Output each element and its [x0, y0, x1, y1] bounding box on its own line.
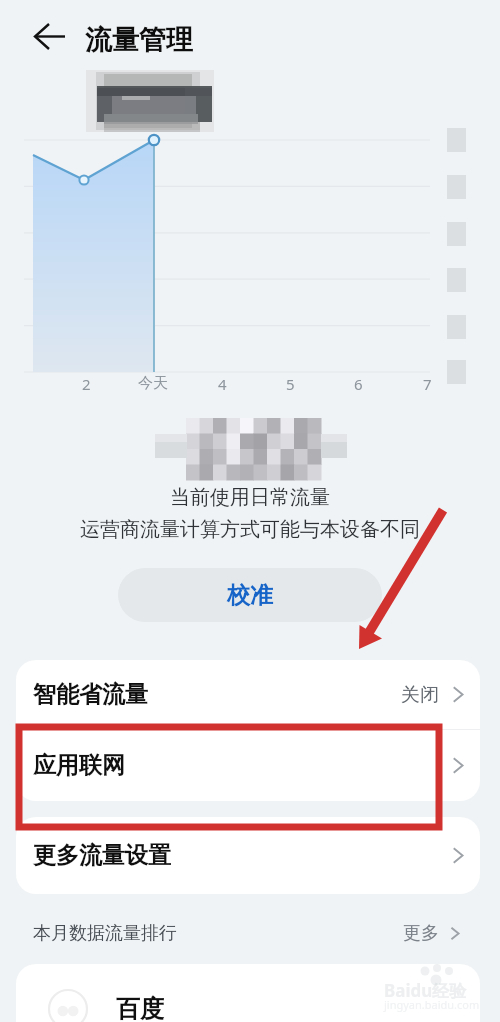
staticText: 运营商流量计算方式可能与本设备不同	[0, 517, 500, 542]
staticText: 流量管理	[85, 23, 193, 57]
staticText: 5	[286, 374, 295, 394]
button[interactable]: 本月数据流量排行	[16, 908, 480, 958]
staticText: 今天	[138, 374, 168, 393]
staticText: 应用联网	[33, 751, 125, 780]
staticText: 2	[82, 374, 91, 394]
button[interactable]: 百度	[16, 964, 480, 1022]
staticText: 4	[218, 374, 227, 394]
button[interactable]: 智能省流量	[16, 660, 480, 729]
staticText: 更多	[403, 922, 439, 945]
staticText: 智能省流量	[33, 680, 148, 709]
staticText: 6	[354, 374, 363, 394]
staticText: 本月数据流量排行	[33, 922, 177, 945]
button[interactable]: 更多流量设置	[16, 817, 480, 894]
staticText: jingyan.baidu.com	[384, 997, 480, 1012]
staticText: 关闭	[401, 683, 439, 707]
staticText: 7	[423, 374, 432, 394]
staticText: 更多流量设置	[33, 841, 171, 870]
button[interactable]: Back	[18, 12, 68, 62]
staticText: 校准	[227, 581, 273, 610]
button[interactable]: 校准	[118, 568, 382, 622]
button[interactable]: 应用联网	[16, 730, 480, 801]
staticText: 百度	[116, 994, 164, 1022]
staticText: 当前使用日常流量	[0, 485, 500, 510]
staticText: Baidu经验	[384, 979, 467, 1002]
